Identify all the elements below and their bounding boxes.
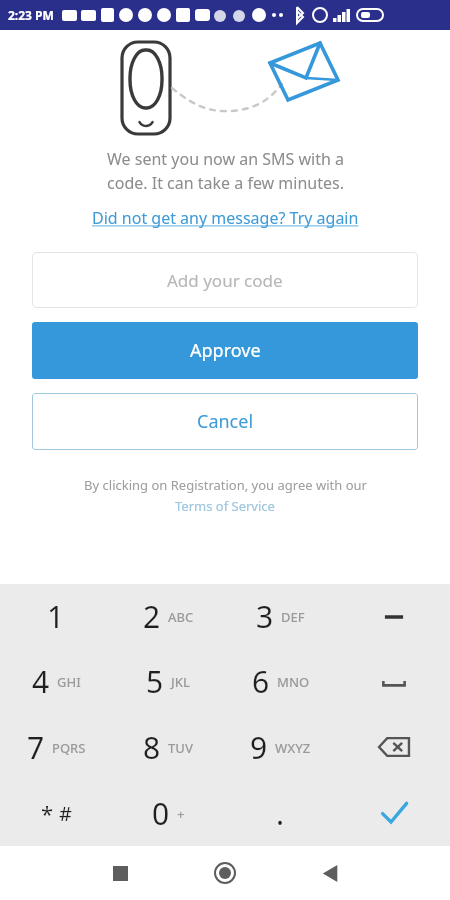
button[interactable]: 7 — [0, 714, 112, 780]
staticText: 6 — [252, 661, 270, 702]
staticText: 9 — [250, 727, 268, 768]
staticText: Cancel — [197, 409, 254, 434]
staticText: 7 — [27, 727, 45, 768]
button[interactable]: Backspace — [337, 714, 450, 780]
staticText: WXYZ — [275, 739, 311, 757]
staticText: 3 — [256, 596, 274, 637]
staticText: + — [177, 805, 185, 823]
button[interactable]: 5 — [112, 649, 224, 714]
staticText: MNO — [277, 673, 310, 691]
button[interactable]: Done — [337, 780, 450, 846]
staticText: Did not get any message? Try again — [92, 207, 359, 229]
staticText: DEF — [281, 608, 305, 626]
button[interactable]: Did not get any message? Try again — [88, 205, 363, 231]
staticText: 5 — [146, 661, 164, 702]
staticText: Approve — [190, 338, 261, 363]
staticText: 8 — [143, 727, 161, 768]
button[interactable]: Approve — [32, 322, 418, 379]
staticText: 2 — [143, 596, 161, 637]
button[interactable]: 0 — [112, 780, 224, 846]
staticText: . — [276, 793, 285, 834]
staticText: Terms of Service — [175, 497, 275, 515]
button[interactable]: 3 — [224, 584, 337, 649]
button[interactable]: 8 — [112, 714, 224, 780]
staticText: * — [41, 798, 54, 828]
button[interactable]: * — [0, 780, 112, 846]
staticText: GHI — [57, 673, 81, 691]
staticText: JKL — [171, 673, 190, 691]
button[interactable]: 4 — [0, 649, 112, 714]
staticText: 2:23 PM — [8, 7, 54, 23]
button[interactable]: Add your code — [32, 252, 418, 308]
staticText: TUV — [168, 739, 193, 757]
button[interactable]: Back — [306, 849, 354, 897]
staticText: 4 — [32, 661, 50, 702]
staticText: Add your code — [167, 269, 283, 292]
button[interactable]: 2 — [112, 584, 224, 649]
button[interactable]: Space — [337, 649, 450, 714]
button[interactable]: Dash — [337, 584, 450, 649]
button[interactable]: Recents — [96, 849, 144, 897]
staticText: 1 — [47, 596, 65, 637]
button[interactable]: 1 — [0, 584, 112, 649]
staticText: We sent you now an SMS with a code. It c… — [107, 148, 344, 194]
staticText: PQRS — [52, 739, 86, 757]
button[interactable]: Cancel — [32, 393, 418, 450]
button[interactable]: 6 — [224, 649, 337, 714]
staticText: # — [59, 800, 72, 827]
button[interactable]: Terms of Service — [175, 497, 275, 515]
staticText: ABC — [168, 608, 194, 626]
button[interactable]: . — [224, 780, 337, 846]
button[interactable]: 9 — [224, 714, 337, 780]
button[interactable]: Home — [201, 849, 249, 897]
staticText: By clicking on Registration, you agree w… — [84, 476, 367, 494]
staticText: 0 — [152, 793, 170, 834]
